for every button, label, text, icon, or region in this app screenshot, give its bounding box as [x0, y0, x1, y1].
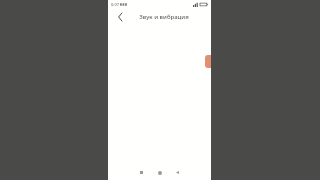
staticText: 0:07 — [111, 2, 119, 7]
button[interactable]: Recents — [136, 167, 147, 178]
staticText: Звук и вибрация — [139, 13, 189, 21]
button[interactable]: Back — [114, 11, 126, 23]
other: Scroll indicator — [205, 55, 211, 68]
button[interactable]: Back — [172, 167, 183, 178]
button[interactable]: Home — [154, 167, 165, 178]
